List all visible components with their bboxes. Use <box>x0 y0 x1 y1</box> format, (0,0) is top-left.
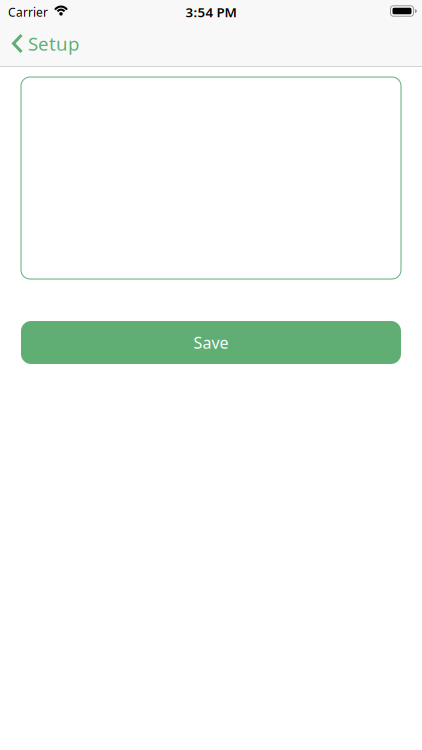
button[interactable]: Back <box>12 31 79 56</box>
staticText: Setup <box>28 31 79 56</box>
staticText: 3:54 PM <box>185 3 236 21</box>
staticText: Save <box>193 332 228 353</box>
staticText: Carrier <box>8 4 48 20</box>
button[interactable]: Save <box>21 321 401 364</box>
